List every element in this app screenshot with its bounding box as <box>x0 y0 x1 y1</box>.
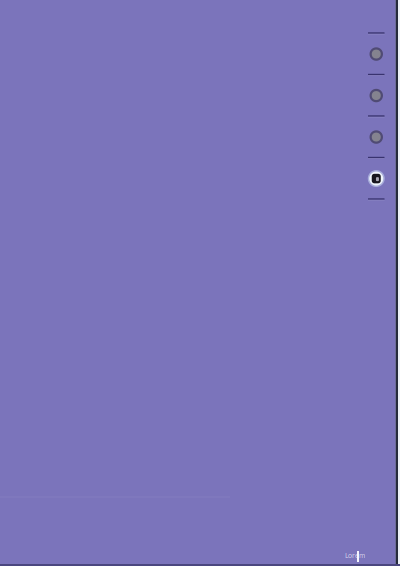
button[interactable]: Item 3 <box>368 117 384 157</box>
button[interactable]: Item 1 <box>368 34 384 74</box>
button[interactable]: Item 4 <box>368 159 384 198</box>
staticText: Lorem <box>345 551 365 560</box>
button[interactable]: Item 2 <box>368 76 384 115</box>
